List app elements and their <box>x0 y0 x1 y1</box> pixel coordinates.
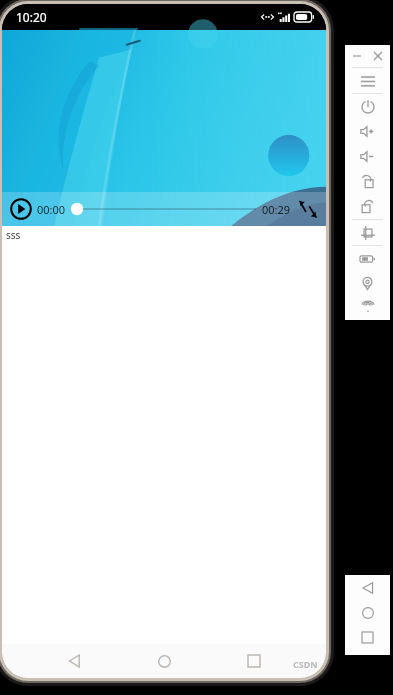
button[interactable]: Recent apps <box>237 644 271 678</box>
button[interactable]: Battery <box>345 246 390 271</box>
staticText: 10:20 <box>16 9 47 25</box>
button[interactable]: Volume down <box>345 144 390 169</box>
button[interactable]: Screenshot <box>345 220 390 245</box>
button[interactable]: Menu <box>345 68 390 93</box>
button[interactable] <box>70 198 258 220</box>
button[interactable]: Power <box>345 94 390 119</box>
button[interactable]: Rotate left <box>345 169 390 194</box>
button[interactable]: Home <box>147 644 181 678</box>
staticText: 00:00 <box>37 202 66 217</box>
button[interactable]: Close <box>370 48 386 64</box>
button[interactable]: Minimize <box>349 48 365 64</box>
staticText: CSDN <box>293 658 318 670</box>
button[interactable]: Volume up <box>345 119 390 144</box>
staticText: sss <box>6 228 21 242</box>
button[interactable]: Location <box>345 271 390 296</box>
button[interactable]: Home <box>345 600 390 625</box>
button[interactable]: Play <box>10 198 32 220</box>
button[interactable]: Overview <box>345 625 390 650</box>
button[interactable]: Back <box>345 575 390 600</box>
button[interactable]: Rotate right <box>345 194 390 219</box>
button[interactable]: Back <box>58 644 92 678</box>
button[interactable]: Fullscreen <box>298 199 318 219</box>
button[interactable]: Cellular / Wi-Fi <box>345 296 390 320</box>
staticText: 00:29 <box>262 202 291 217</box>
